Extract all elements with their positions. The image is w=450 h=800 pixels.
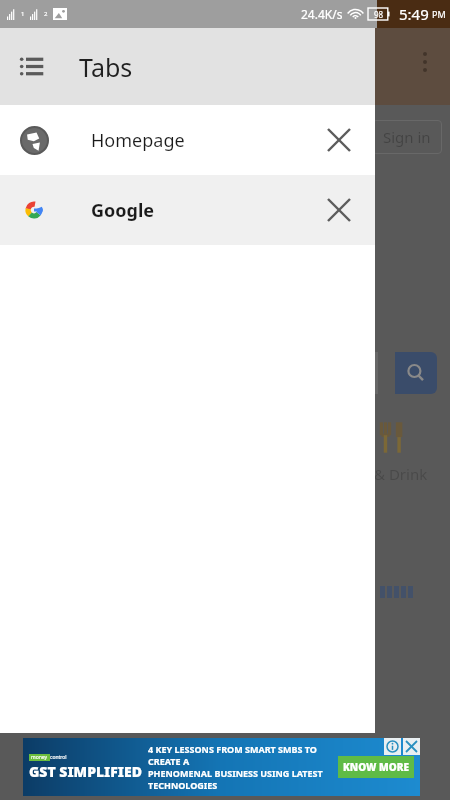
button[interactable]: money xyxy=(23,738,420,796)
staticText: KNOW MORE xyxy=(343,760,409,774)
button[interactable]: Homepage xyxy=(0,105,375,175)
button[interactable]: Tabs xyxy=(0,28,375,105)
staticText: 4 KEY LESSONS FROM SMART SMBS TO CREATE … xyxy=(148,743,338,767)
staticText: Google xyxy=(91,198,155,223)
staticText: PHENOMENAL BUSINESS USING LATEST TECHNOL… xyxy=(148,767,338,791)
staticText: 5:49 xyxy=(399,4,429,24)
button[interactable]: More options xyxy=(413,52,437,76)
staticText: & Drink xyxy=(374,464,428,484)
button[interactable]: Sign in xyxy=(372,120,442,154)
staticText: Tabs xyxy=(79,50,133,84)
staticText: GST SIMPLIFIED xyxy=(29,762,142,781)
button[interactable]: Close ad xyxy=(403,738,420,755)
staticText: control xyxy=(50,754,67,761)
button[interactable]: KNOW MORE xyxy=(343,756,409,778)
staticText: 98 xyxy=(374,9,384,20)
button[interactable]: Close Homepage tab xyxy=(314,115,364,165)
button[interactable]: Close Google tab xyxy=(314,185,364,235)
staticText: Homepage xyxy=(91,128,185,153)
staticText: PM xyxy=(432,8,446,20)
staticText: Sign in xyxy=(383,127,431,147)
button[interactable]: Search xyxy=(395,352,437,394)
button[interactable]: Ad info xyxy=(384,738,401,755)
staticText: money xyxy=(31,754,48,761)
button[interactable]: Google xyxy=(0,175,375,245)
staticText: 1 xyxy=(21,10,25,18)
staticText: 24.4K/s xyxy=(301,6,343,22)
staticText: 2 xyxy=(44,10,48,18)
